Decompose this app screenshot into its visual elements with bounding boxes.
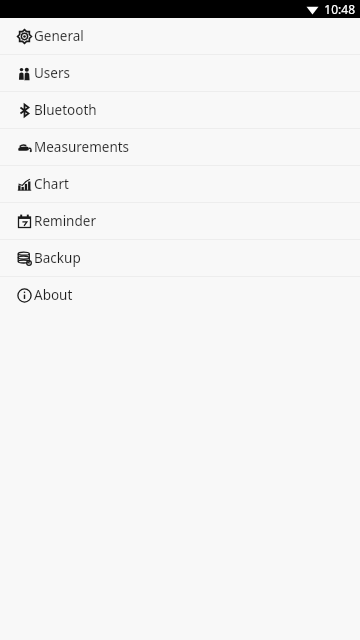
staticText: Backup — [34, 249, 81, 267]
button[interactable]: Chart — [0, 166, 360, 202]
staticText: Chart — [34, 175, 69, 193]
button[interactable]: Users — [0, 55, 360, 91]
button[interactable]: General — [0, 18, 360, 54]
other: Wi-Fi signal — [306, 4, 319, 15]
staticText: Users — [34, 64, 70, 82]
staticText: Bluetooth — [34, 101, 97, 119]
staticText: About — [34, 286, 73, 304]
button[interactable]: Measurements — [0, 129, 360, 165]
button[interactable]: Bluetooth — [0, 92, 360, 128]
button[interactable]: About — [0, 277, 360, 313]
button[interactable]: Backup — [0, 240, 360, 276]
staticText: General — [34, 27, 84, 45]
button[interactable]: Reminder — [0, 203, 360, 239]
staticText: Reminder — [34, 212, 96, 230]
staticText: 10:48 — [324, 1, 355, 17]
staticText: Measurements — [34, 138, 130, 156]
